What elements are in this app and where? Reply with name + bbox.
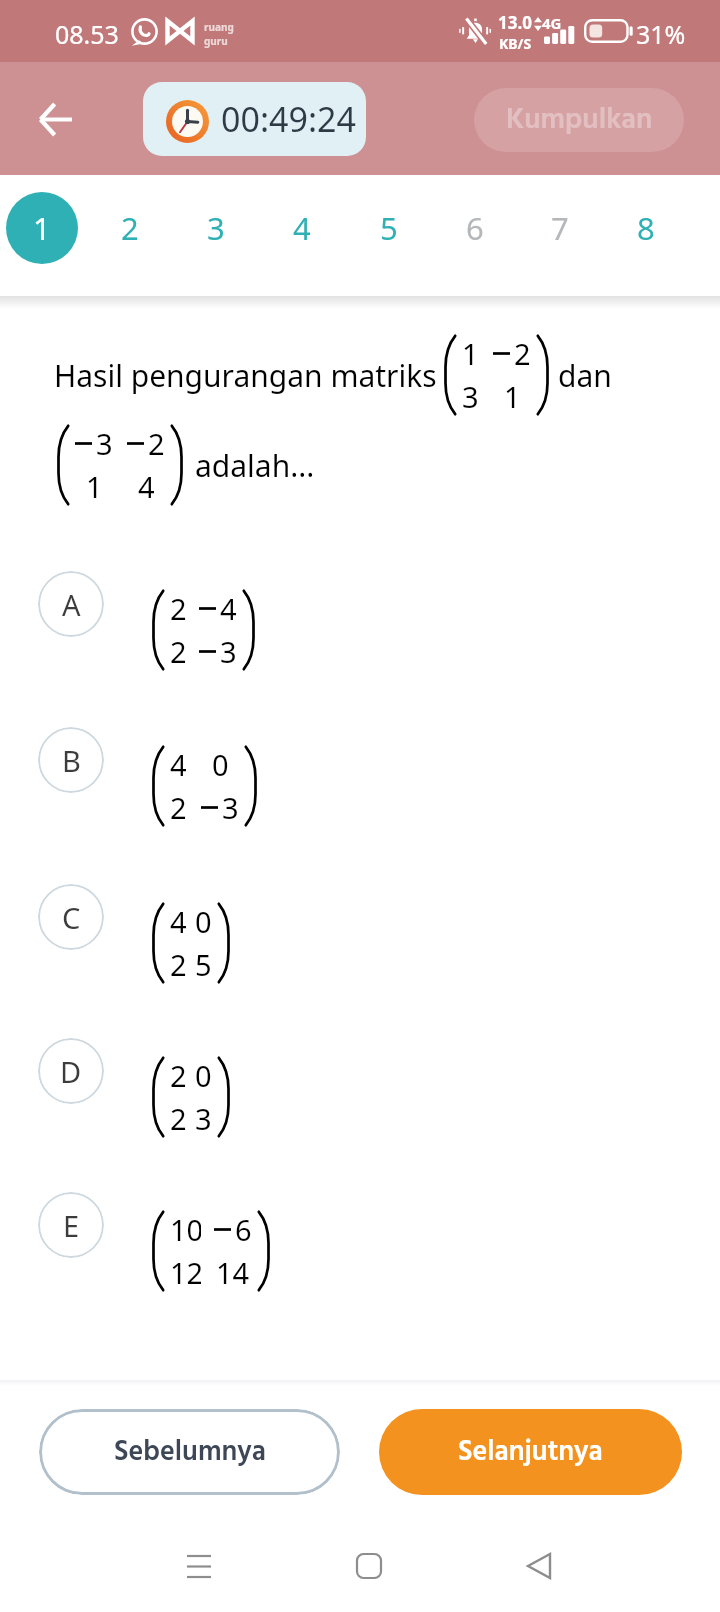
button[interactable]: Selanjutnya xyxy=(379,1409,682,1495)
button[interactable]: D xyxy=(0,1015,720,1127)
staticText: 3 xyxy=(462,377,479,416)
button[interactable]: C xyxy=(0,861,720,973)
staticText: 3 xyxy=(220,632,237,671)
staticText: A xyxy=(62,585,81,624)
staticText: E xyxy=(63,1206,80,1245)
staticText: 4 xyxy=(293,207,311,249)
staticText: ruang xyxy=(204,20,234,34)
staticText: 4 xyxy=(138,467,155,506)
staticText: 2 xyxy=(170,632,187,671)
button[interactable]: 00:49:24 xyxy=(143,82,366,156)
staticText: Sebelumnya xyxy=(114,1430,266,1475)
staticText: 08.53 xyxy=(55,17,119,51)
staticText: 6 xyxy=(466,207,484,249)
button[interactable]: Sebelumnya xyxy=(39,1409,340,1495)
staticText: 2 xyxy=(170,1056,187,1095)
button[interactable]: 4 xyxy=(266,192,338,264)
staticText: Selanjutnya xyxy=(458,1430,603,1475)
staticText: 4 xyxy=(220,589,237,628)
staticText: D xyxy=(60,1052,82,1091)
staticText: 2 xyxy=(170,788,187,827)
staticText: KB/S xyxy=(499,34,532,53)
button[interactable]: B xyxy=(0,704,720,816)
button[interactable]: 6 xyxy=(439,192,511,264)
staticText: 4 xyxy=(170,902,187,941)
staticText: B xyxy=(62,741,81,780)
staticText: 0 xyxy=(212,745,229,784)
button[interactable]: Recent apps xyxy=(169,1536,229,1596)
staticText: 8 xyxy=(637,207,655,249)
staticText: Kumpulkan xyxy=(506,97,653,143)
button[interactable]: 1 xyxy=(6,192,78,264)
staticText: 10 xyxy=(170,1210,201,1249)
staticText: adalah... xyxy=(195,445,315,486)
button[interactable]: Back xyxy=(28,91,84,147)
staticText: 3 xyxy=(222,788,239,827)
staticText: 1 xyxy=(504,377,521,416)
staticText: 00:49:24 xyxy=(221,96,356,142)
staticText: Hasil pengurangan matriks xyxy=(54,355,437,396)
staticText: 2 xyxy=(170,945,187,984)
staticText: 0 xyxy=(195,902,212,941)
staticText: 12 xyxy=(170,1253,201,1292)
staticText: 1 xyxy=(462,334,479,373)
staticText: 5 xyxy=(195,945,212,984)
staticText: 2 xyxy=(148,424,165,463)
staticText: 6 xyxy=(235,1210,252,1249)
staticText: C xyxy=(62,898,81,937)
button[interactable]: Kumpulkan xyxy=(474,88,684,152)
staticText: dan xyxy=(558,355,612,396)
button[interactable]: Home xyxy=(339,1536,399,1596)
button[interactable]: 5 xyxy=(353,192,425,264)
button[interactable]: 7 xyxy=(524,192,596,264)
button[interactable]: 8 xyxy=(610,192,682,264)
staticText: 3 xyxy=(195,1099,212,1138)
staticText: 0 xyxy=(195,1056,212,1095)
staticText: 2 xyxy=(514,334,531,373)
button[interactable]: 3 xyxy=(180,192,252,264)
staticText: 3 xyxy=(207,207,225,249)
staticText: 4 xyxy=(170,745,187,784)
staticText: 31% xyxy=(636,17,686,51)
button[interactable]: A xyxy=(0,548,720,660)
staticText: 2 xyxy=(170,1099,187,1138)
staticText: 2 xyxy=(170,589,187,628)
staticText: 13.0 xyxy=(498,11,532,34)
staticText: 14 xyxy=(216,1253,250,1292)
staticText: 5 xyxy=(380,207,398,249)
button[interactable]: 2 xyxy=(94,192,166,264)
staticText: 3 xyxy=(96,424,113,463)
staticText: 1 xyxy=(86,467,103,506)
staticText: 7 xyxy=(551,207,569,249)
button[interactable]: E xyxy=(0,1169,720,1281)
staticText: 1 xyxy=(33,207,51,249)
staticText: 4G xyxy=(542,13,562,33)
button[interactable]: Back xyxy=(509,1536,569,1596)
staticText: guru xyxy=(204,34,228,48)
staticText: 2 xyxy=(121,207,139,249)
